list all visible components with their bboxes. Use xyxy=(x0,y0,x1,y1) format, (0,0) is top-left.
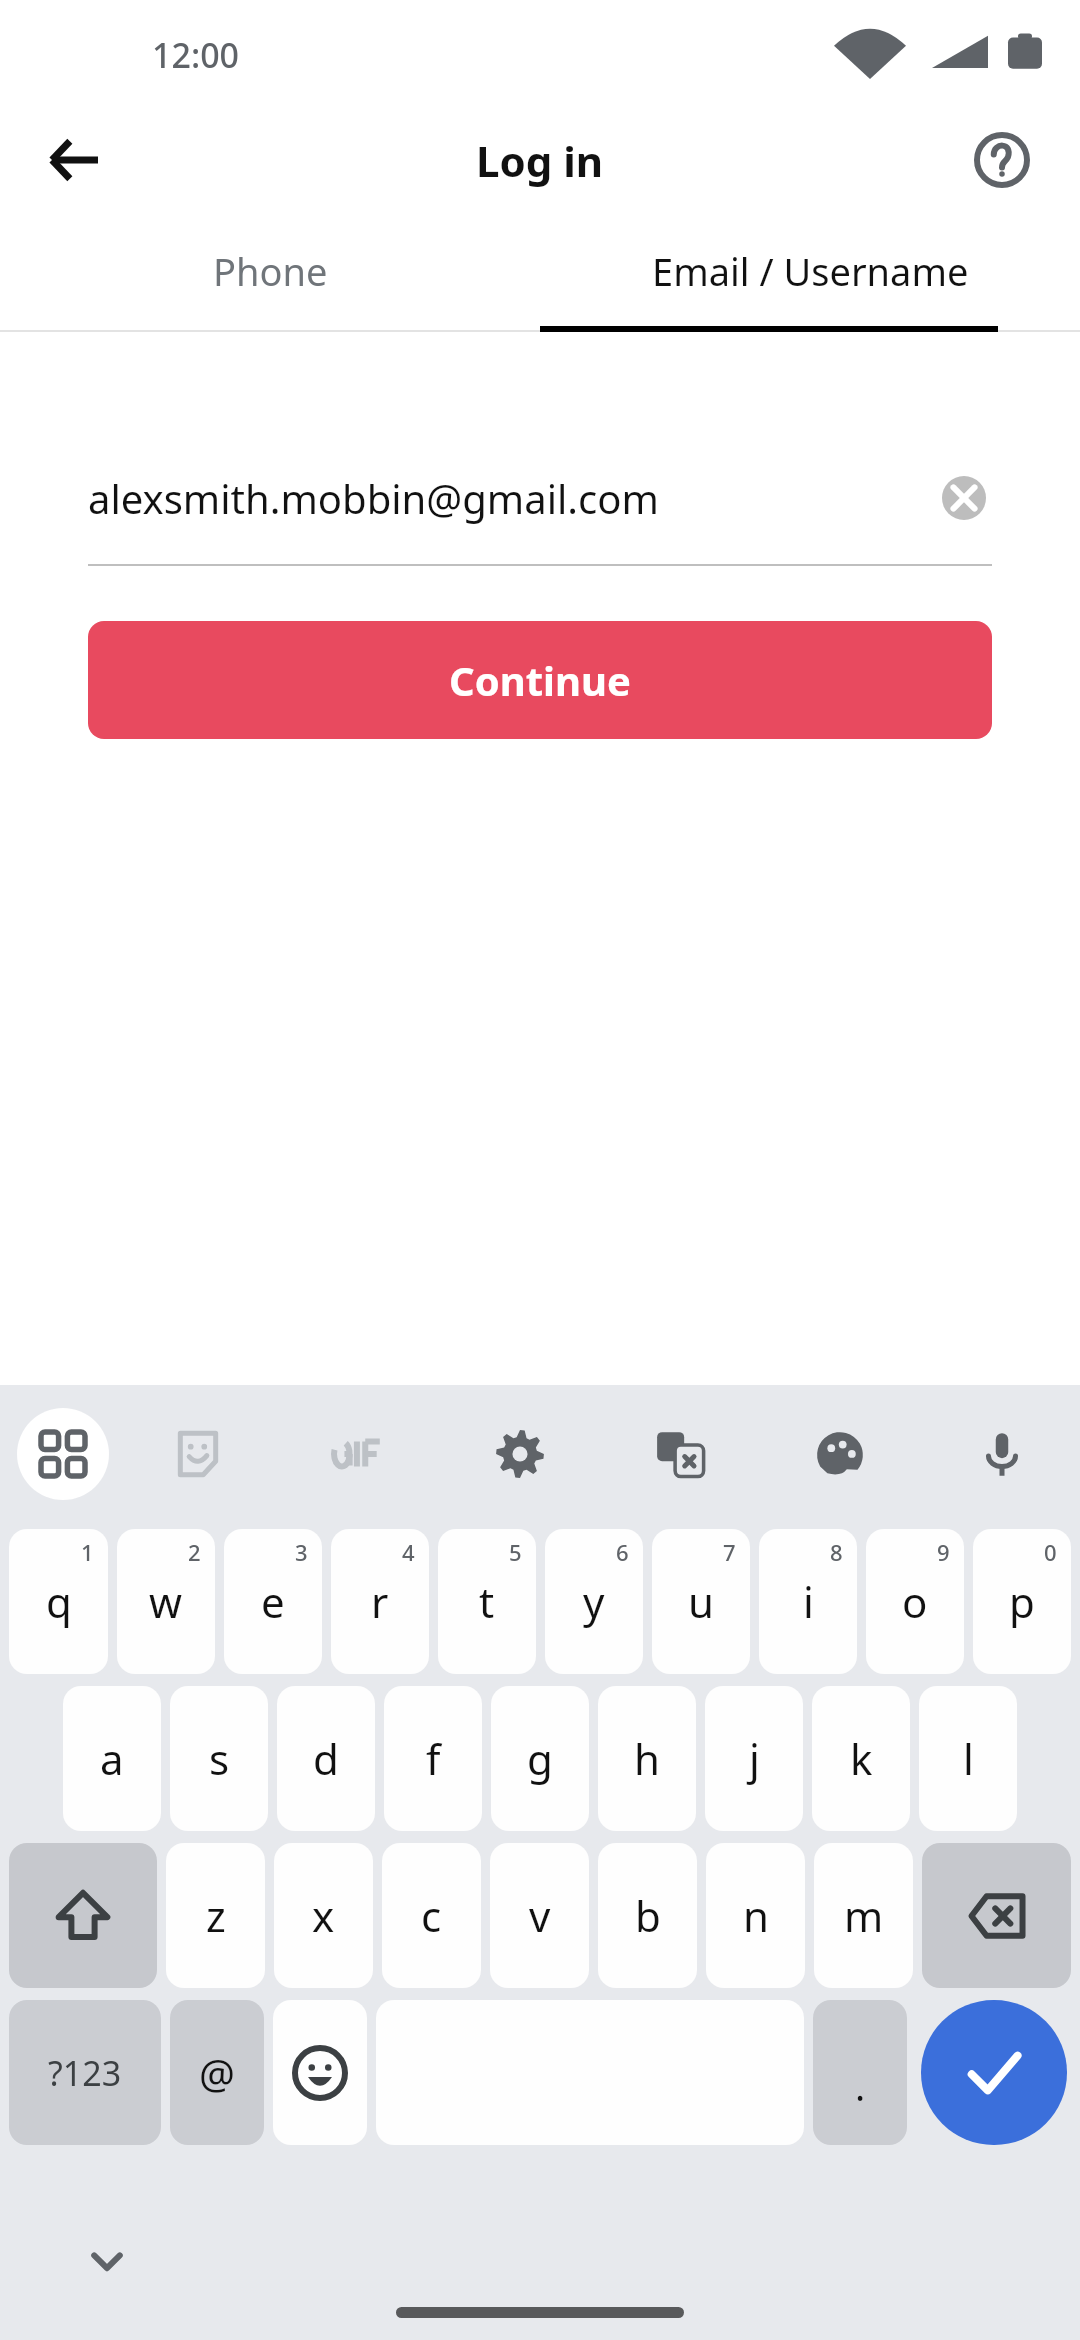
staticText: b xyxy=(635,1887,661,1944)
button[interactable]: 0 xyxy=(973,1529,1071,1674)
staticText: f xyxy=(426,1730,441,1787)
button[interactable]: Phone xyxy=(0,210,540,332)
button[interactable]: 6 xyxy=(545,1529,643,1674)
button[interactable]: Settings xyxy=(472,1406,568,1502)
staticText: 12:00 xyxy=(152,32,240,78)
button[interactable]: @ xyxy=(170,2000,264,2145)
button[interactable]: Email / Username xyxy=(540,210,1080,332)
staticText: k xyxy=(850,1730,873,1787)
staticText: p xyxy=(1009,1573,1035,1630)
button[interactable]: c xyxy=(382,1843,481,1988)
button[interactable]: x xyxy=(274,1843,373,1988)
staticText: h xyxy=(634,1730,660,1787)
button[interactable]: Backspace xyxy=(922,1843,1071,1988)
button[interactable]: b xyxy=(598,1843,697,1988)
button[interactable]: Enter xyxy=(921,2000,1067,2145)
button[interactable]: . xyxy=(813,2000,907,2145)
staticText: a xyxy=(100,1730,124,1787)
button[interactable]: 4 xyxy=(331,1529,429,1674)
button[interactable]: n xyxy=(706,1843,805,1988)
staticText: Email / Username xyxy=(652,245,969,297)
staticText: x xyxy=(312,1887,335,1944)
staticText: 3 xyxy=(295,1537,308,1567)
button[interactable]: Back xyxy=(28,114,120,206)
staticText: w xyxy=(149,1573,183,1630)
staticText: 0 xyxy=(1044,1537,1057,1567)
staticText: 7 xyxy=(723,1537,736,1567)
button[interactable]: a xyxy=(63,1686,161,1831)
staticText: g xyxy=(527,1730,553,1787)
staticText: o xyxy=(902,1573,928,1630)
button[interactable]: 9 xyxy=(866,1529,964,1674)
button[interactable]: 8 xyxy=(759,1529,857,1674)
staticText: y xyxy=(583,1573,605,1630)
button[interactable]: Themes xyxy=(793,1406,889,1502)
button[interactable]: f xyxy=(384,1686,482,1831)
staticText: l xyxy=(963,1730,974,1787)
staticText: 5 xyxy=(509,1537,522,1567)
staticText: m xyxy=(844,1887,884,1944)
staticText: Continue xyxy=(449,653,631,707)
staticText: ?123 xyxy=(48,2050,122,2096)
staticText: s xyxy=(209,1730,230,1787)
staticText: r xyxy=(371,1573,389,1630)
button[interactable]: 7 xyxy=(652,1529,750,1674)
button[interactable]: Stickers xyxy=(150,1406,246,1502)
staticText: . xyxy=(855,2060,866,2112)
button[interactable]: Continue xyxy=(88,621,992,739)
staticText: i xyxy=(803,1573,814,1630)
staticText: d xyxy=(313,1730,339,1787)
staticText: n xyxy=(743,1887,769,1944)
button[interactable]: Translate xyxy=(632,1406,728,1502)
button[interactable]: Help xyxy=(956,114,1048,206)
staticText: Log in xyxy=(476,132,604,189)
button[interactable]: m xyxy=(814,1843,913,1988)
button[interactable]: 5 xyxy=(438,1529,536,1674)
staticText: t xyxy=(479,1573,495,1630)
button[interactable]: v xyxy=(490,1843,589,1988)
button[interactable]: g xyxy=(491,1686,589,1831)
staticText: 4 xyxy=(402,1537,415,1567)
staticText: u xyxy=(688,1573,714,1630)
button[interactable]: 3 xyxy=(224,1529,322,1674)
staticText: 2 xyxy=(188,1537,201,1567)
button[interactable]: Emoji xyxy=(273,2000,367,2145)
staticText: j xyxy=(749,1730,760,1787)
button[interactable]: k xyxy=(812,1686,910,1831)
button[interactable]: Hide keyboard xyxy=(62,2216,152,2306)
staticText: c xyxy=(421,1887,442,1944)
staticText: q xyxy=(46,1573,72,1630)
staticText: 1 xyxy=(81,1537,94,1567)
button[interactable]: z xyxy=(166,1843,265,1988)
staticText: 6 xyxy=(616,1537,629,1567)
button[interactable]: s xyxy=(170,1686,268,1831)
staticText: v xyxy=(529,1887,551,1944)
staticText: @ xyxy=(199,2046,235,2100)
button[interactable]: 2 xyxy=(117,1529,215,1674)
staticText: Phone xyxy=(213,245,328,297)
button[interactable]: j xyxy=(705,1686,803,1831)
staticText: z xyxy=(206,1887,226,1944)
staticText: e xyxy=(261,1573,285,1630)
button[interactable]: ?123 xyxy=(9,2000,161,2145)
button[interactable]: GIF xyxy=(311,1406,407,1502)
button[interactable]: 1 xyxy=(9,1529,108,1674)
button[interactable]: Apps xyxy=(17,1408,109,1500)
button[interactable]: l xyxy=(919,1686,1017,1831)
staticText: 8 xyxy=(830,1537,843,1567)
staticText: alexsmith.mobbin@gmail.com xyxy=(88,471,659,525)
staticText: 9 xyxy=(937,1537,950,1567)
button[interactable]: Clear text xyxy=(936,470,992,526)
button[interactable]: Shift xyxy=(9,1843,157,1988)
button[interactable]: Voice input xyxy=(954,1406,1050,1502)
button[interactable]: d xyxy=(277,1686,375,1831)
button[interactable]: h xyxy=(598,1686,696,1831)
